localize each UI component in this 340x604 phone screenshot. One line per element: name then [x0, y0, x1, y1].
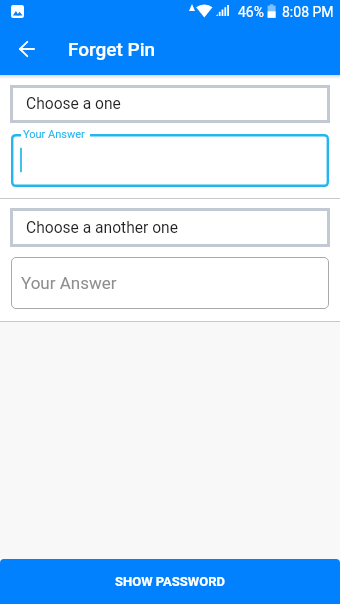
staticText: SHOW PASSWORD: [115, 574, 225, 589]
button[interactable]: Back: [8, 31, 46, 69]
staticText: Your Answer: [21, 273, 117, 293]
button[interactable]: SHOW PASSWORD: [0, 559, 340, 604]
staticText: 8:08 PM: [282, 4, 334, 20]
button[interactable]: Your Answer: [11, 257, 329, 309]
staticText: Choose a another one: [26, 219, 178, 237]
staticText: Forget Pin: [68, 38, 156, 60]
staticText: Your Answer: [23, 128, 85, 141]
staticText: Choose a one: [26, 95, 121, 113]
button[interactable]: Your Answer: [11, 134, 329, 187]
button[interactable]: Choose a one: [10, 85, 330, 123]
staticText: 46%: [238, 4, 264, 20]
button[interactable]: Choose a another one: [10, 208, 330, 247]
